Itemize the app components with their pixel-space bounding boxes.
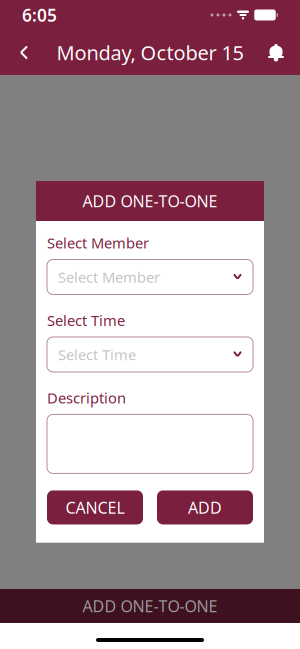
- button[interactable]: Notifications: [254, 30, 298, 74]
- staticText: CANCEL: [65, 497, 124, 518]
- button[interactable]: Back: [2, 30, 46, 74]
- staticText: 6:05: [22, 3, 57, 26]
- button[interactable]: ADD: [157, 490, 253, 524]
- button[interactable]: Select Member: [47, 259, 253, 294]
- staticText: Select Member: [58, 267, 160, 287]
- staticText: Select Time: [47, 310, 125, 330]
- staticText: Description: [47, 388, 126, 407]
- staticText: Select Time: [58, 345, 136, 364]
- staticText: ADD ONE-TO-ONE: [82, 595, 217, 617]
- button[interactable]: Select Time: [47, 337, 253, 372]
- staticText: ADD: [188, 497, 222, 518]
- button[interactable]: ADD ONE-TO-ONE: [0, 589, 300, 623]
- staticText: ADD ONE-TO-ONE: [82, 190, 217, 212]
- button[interactable]: CANCEL: [47, 490, 143, 524]
- staticText: Monday, October 15: [56, 39, 243, 66]
- staticText: Select Member: [47, 233, 149, 252]
